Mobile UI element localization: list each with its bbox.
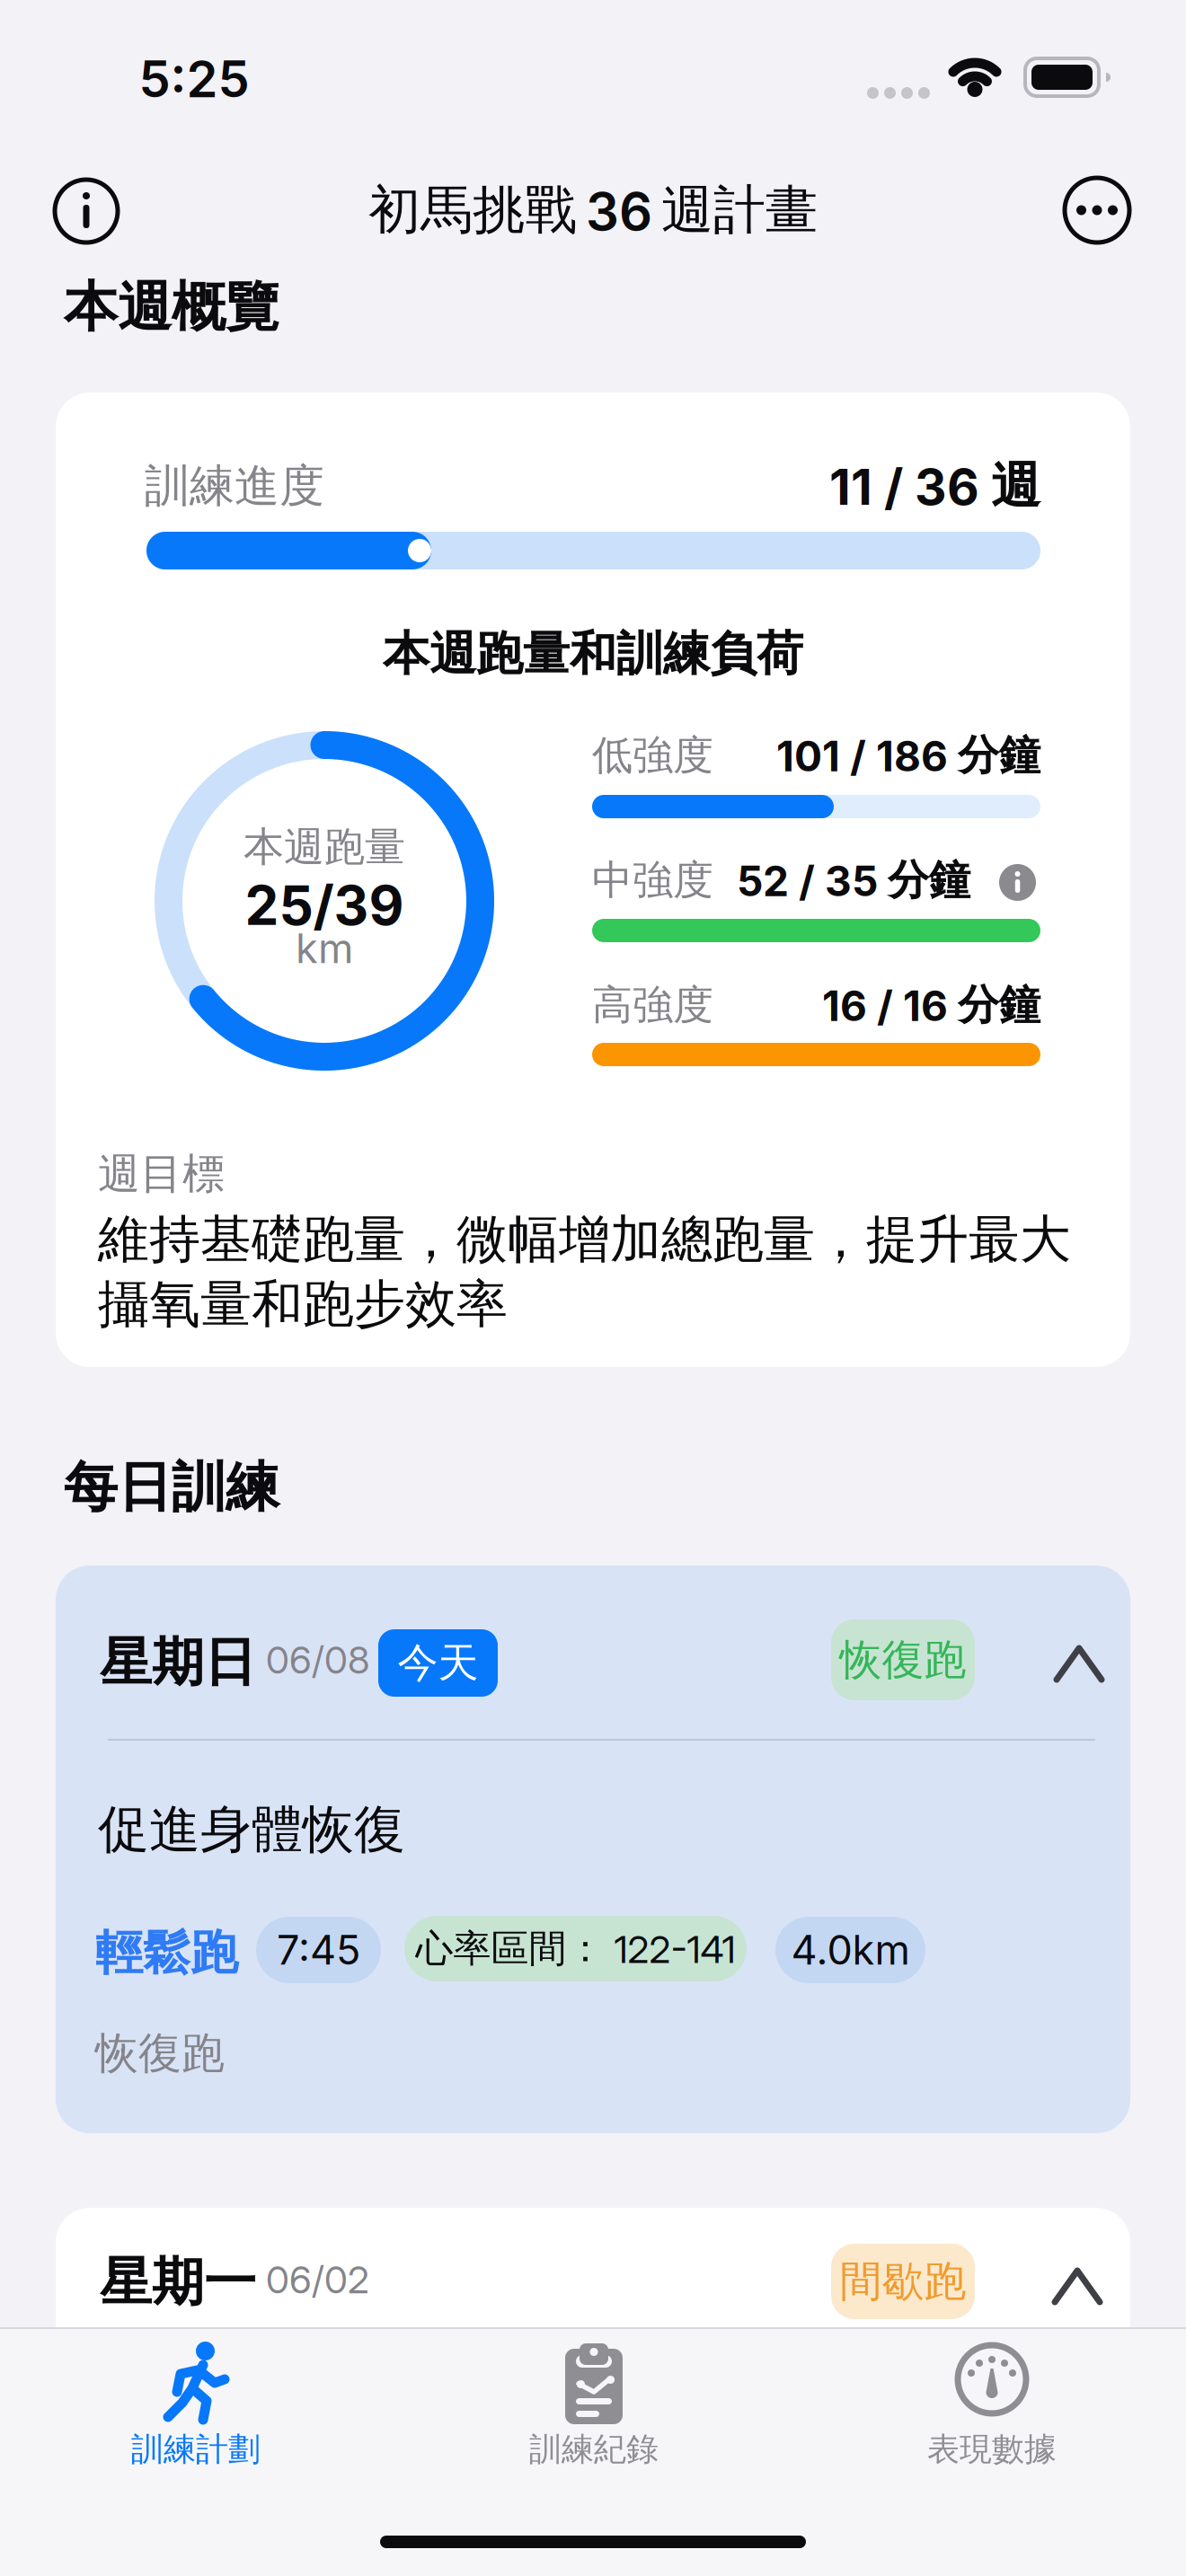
staticText: 心率區間： 122-141 bbox=[416, 1925, 735, 1972]
staticText: 輕鬆跑 bbox=[95, 1923, 238, 1982]
staticText: 16 / 16 分鐘 bbox=[822, 980, 1040, 1030]
staticText: 52 / 35 分鐘 bbox=[737, 855, 970, 906]
staticText: 4.0km bbox=[791, 1926, 910, 1974]
button[interactable]: 表現數據 bbox=[841, 2342, 1143, 2476]
staticText: 促進身體恢復 bbox=[98, 1798, 405, 1861]
staticText: 今天 bbox=[398, 1638, 478, 1688]
staticText: 星期日 bbox=[100, 1631, 256, 1695]
button[interactable]: 中強度說明 bbox=[999, 864, 1036, 901]
staticText: 恢復跑 bbox=[840, 1634, 966, 1686]
staticText: 每日訓練 bbox=[64, 1454, 279, 1521]
staticText: 本週概覽 bbox=[64, 274, 279, 340]
button[interactable]: 收合 bbox=[1057, 1648, 1102, 1680]
staticText: 5:25 bbox=[139, 49, 249, 109]
staticText: 低強度 bbox=[592, 731, 713, 780]
staticText: 中強度 bbox=[592, 855, 713, 905]
staticText: 初馬挑戰 36 週計畫 bbox=[368, 178, 818, 242]
button[interactable]: 資訊 bbox=[55, 180, 118, 243]
staticText: 訓練計劃 bbox=[131, 2430, 261, 2469]
staticText: 間歇跑 bbox=[840, 2255, 966, 2307]
button[interactable]: 星期一 06/02 間歇跑 收合 bbox=[56, 2208, 1130, 2327]
button[interactable]: 訓練計劃 bbox=[45, 2342, 347, 2476]
staticText: 訓練進度 bbox=[145, 458, 324, 513]
button[interactable]: 收合 bbox=[1055, 2271, 1100, 2302]
staticText: 7:45 bbox=[277, 1926, 360, 1974]
staticText: 表現數據 bbox=[927, 2430, 1057, 2469]
staticText: 週目標 bbox=[98, 1148, 225, 1200]
staticText: 恢復跑 bbox=[95, 2027, 225, 2080]
staticText: 06/08 bbox=[266, 1638, 369, 1682]
button[interactable]: 訓練紀錄 bbox=[443, 2342, 745, 2476]
staticText: 攝氧量和跑步效率 bbox=[98, 1273, 508, 1336]
staticText: 本週跑量和訓練負荷 bbox=[383, 625, 803, 683]
button[interactable]: 星期日 06/08 今天 恢復跑 收合 bbox=[56, 1566, 1130, 1700]
staticText: 101 / 186 分鐘 bbox=[776, 730, 1040, 781]
staticText: 25/39 bbox=[245, 874, 404, 937]
button[interactable]: 更多 bbox=[1065, 178, 1129, 243]
staticText: 訓練紀錄 bbox=[529, 2430, 659, 2469]
staticText: km bbox=[296, 925, 353, 972]
staticText: 維持基礎跑量，微幅增加總跑量，提升最大 bbox=[98, 1208, 1071, 1271]
staticText: 本週跑量 bbox=[243, 822, 405, 872]
staticText: 星期一 bbox=[100, 2250, 256, 2314]
staticText: 06/02 bbox=[266, 2257, 369, 2302]
staticText: 高強度 bbox=[592, 980, 713, 1030]
staticText: 11 / 36 週 bbox=[829, 456, 1040, 516]
